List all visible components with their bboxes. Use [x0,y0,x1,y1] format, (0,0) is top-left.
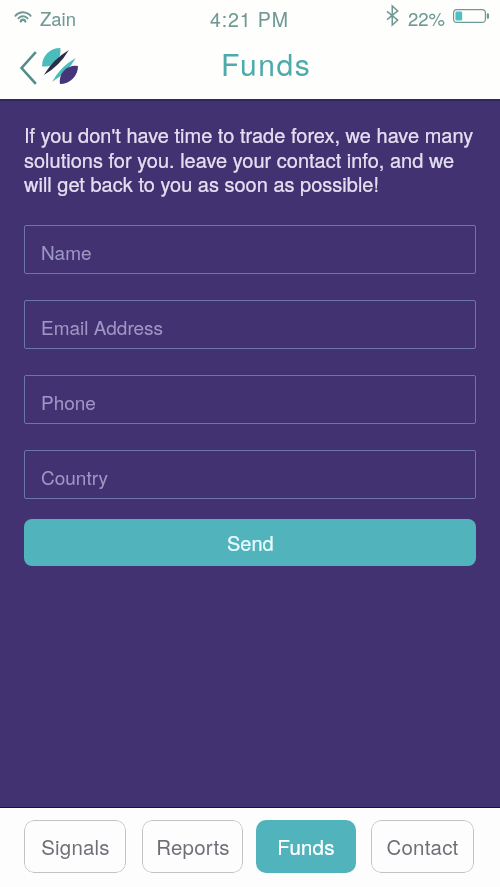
staticText: Funds [277,831,335,860]
staticText: Name [41,238,92,265]
staticText: 22% [408,5,446,31]
staticText: Send [227,528,274,557]
button[interactable]: Phone [24,375,476,424]
button[interactable]: Contact [371,820,474,873]
staticText: Funds [221,42,312,85]
staticText: Signals [41,831,110,860]
button[interactable]: Email Address [24,300,476,349]
staticText: Zain [40,5,76,31]
staticText: 4:21 PM [210,5,289,33]
button[interactable]: Name [24,225,476,274]
button[interactable]: Back [8,42,48,92]
button[interactable]: Signals [24,820,126,873]
button[interactable]: Funds [256,820,356,873]
staticText: Phone [41,388,96,415]
button[interactable]: Reports [142,820,243,873]
button[interactable]: Send [24,519,476,566]
staticText: Country [41,463,108,490]
staticText: Reports [156,831,230,860]
staticText: Contact [386,831,459,860]
staticText: Email Address [41,313,164,340]
staticText: If you don't have time to trade forex, w… [24,120,477,197]
button[interactable]: Country [24,450,476,499]
